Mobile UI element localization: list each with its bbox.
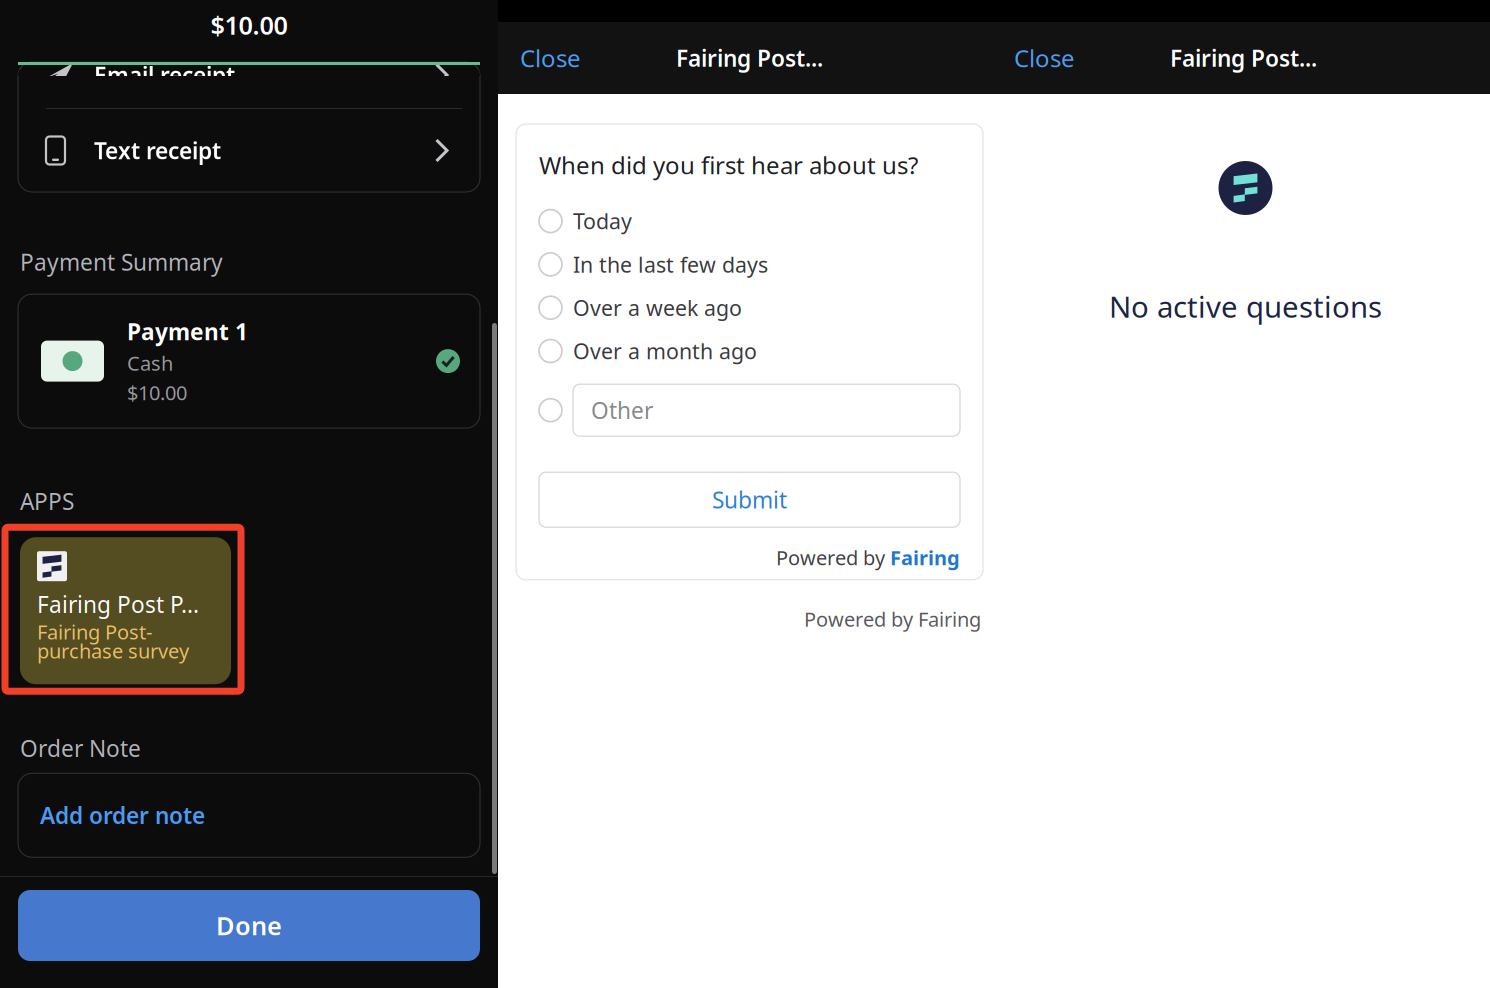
staticText: Close: [520, 42, 581, 74]
staticText: Submit: [712, 485, 787, 515]
staticText: Close: [1014, 42, 1075, 74]
staticText: Powered by Fairing: [804, 606, 981, 632]
staticText: Fairing Post...: [676, 43, 823, 73]
button[interactable]: Text receipt: [18, 109, 480, 192]
button[interactable]: Email receipt: [18, 62, 480, 108]
staticText: Over a week ago: [573, 293, 742, 322]
button[interactable]: Over a week ago: [539, 293, 960, 322]
staticText: purchase survey: [37, 637, 189, 664]
staticText: Fairing: [885, 544, 960, 571]
staticText: Text receipt: [94, 135, 221, 165]
button[interactable]: Fairing Post P...: [20, 537, 231, 684]
staticText: Fairing Post...: [1170, 43, 1317, 73]
button[interactable]: In the last few days: [539, 250, 960, 278]
staticText: When did you first hear about us?: [539, 149, 918, 181]
staticText: Payment Summary: [20, 247, 223, 277]
staticText: Email receipt: [94, 60, 235, 90]
staticText: Fairing Post P...: [37, 589, 199, 619]
staticText: Add order note: [40, 800, 205, 830]
staticText: Order Note: [20, 733, 141, 763]
staticText: Done: [216, 909, 282, 942]
button[interactable]: Close: [498, 22, 603, 94]
staticText: Cash: [127, 350, 173, 376]
staticText: $10.00: [127, 379, 187, 406]
button[interactable]: Over a month ago: [539, 337, 960, 365]
staticText: APPS: [20, 486, 74, 516]
staticText: Payment 1: [127, 316, 248, 347]
staticText: $10.00: [210, 8, 287, 42]
button[interactable]: Submit: [539, 472, 960, 527]
staticText: Powered by: [776, 544, 885, 571]
staticText: Fairing Post-: [37, 618, 152, 645]
button[interactable]: Today: [539, 207, 960, 235]
staticText: Over a month ago: [573, 337, 757, 365]
staticText: No active questions: [1109, 287, 1382, 326]
button[interactable]: Done: [18, 890, 480, 961]
staticText: In the last few days: [573, 250, 768, 278]
button[interactable]: Add order note: [18, 773, 480, 857]
staticText: Today: [573, 207, 632, 235]
staticText: Other: [591, 395, 653, 425]
button[interactable]: Close: [1001, 22, 1097, 94]
